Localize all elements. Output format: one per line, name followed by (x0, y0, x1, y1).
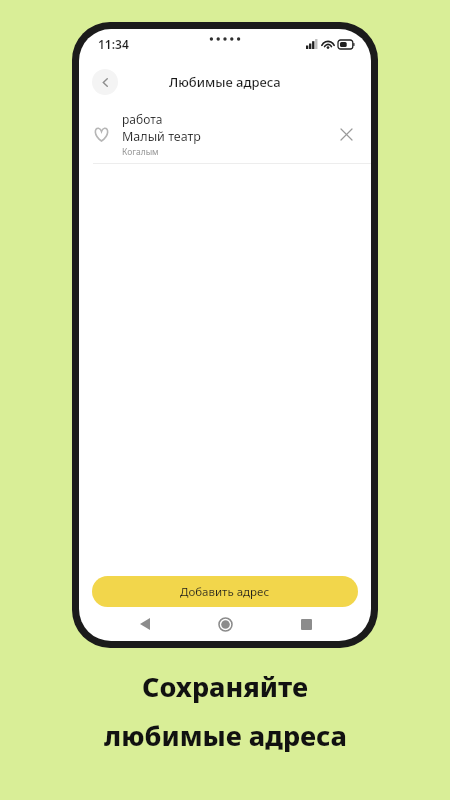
button[interactable]: Back (130, 609, 160, 639)
staticText: работа (122, 111, 163, 127)
button[interactable]: Remove (333, 121, 359, 147)
staticText: Малый театр (122, 128, 201, 145)
staticText: Любимые адреса (169, 73, 281, 91)
button[interactable]: работа (79, 105, 371, 163)
staticText: 11:34 (98, 36, 129, 52)
button[interactable]: Recent apps (291, 609, 321, 639)
button[interactable]: Home (210, 609, 240, 639)
staticText: Добавить адрес (180, 584, 270, 600)
staticText: Когалым (122, 146, 159, 158)
staticText: Сохраняйте (142, 668, 308, 705)
button[interactable]: Добавить адрес (92, 576, 358, 607)
button[interactable]: Back (92, 69, 118, 95)
staticText: любимые адреса (104, 717, 347, 754)
